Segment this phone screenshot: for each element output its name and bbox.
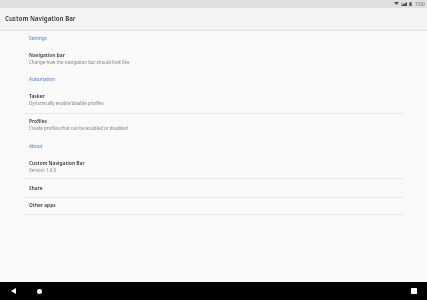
button[interactable]: Custom Navigation Bar [0, 149, 427, 178]
staticText: About [29, 143, 43, 149]
staticText: Version 1.0.0 [29, 167, 57, 173]
staticText: Custom Navigation Bar [29, 160, 85, 167]
button[interactable]: Navigation bar [0, 41, 427, 70]
staticText: Navigation bar [29, 52, 65, 59]
staticText: 7:00 [415, 1, 425, 8]
button[interactable]: Recent apps [404, 282, 423, 300]
button[interactable]: Home [30, 282, 49, 300]
staticText: Automation [29, 76, 56, 82]
button[interactable]: Back [4, 282, 23, 300]
button[interactable]: Profiles [0, 114, 427, 136]
staticText: Custom Navigation Bar [5, 14, 76, 22]
staticText: Share [29, 185, 43, 192]
staticText: Tasker [29, 93, 45, 100]
staticText: Settings [29, 35, 47, 41]
staticText: Create profiles that can be enabled or d… [29, 125, 128, 131]
button[interactable]: Other apps [0, 198, 427, 214]
staticText: Dynamically enable/disable profiles [29, 100, 104, 106]
button[interactable]: Tasker [0, 82, 427, 113]
staticText: Profiles [29, 118, 48, 125]
staticText: Other apps [29, 202, 56, 209]
staticText: Change how the navigation bar should loo… [29, 59, 130, 65]
button[interactable]: Share [0, 179, 427, 197]
